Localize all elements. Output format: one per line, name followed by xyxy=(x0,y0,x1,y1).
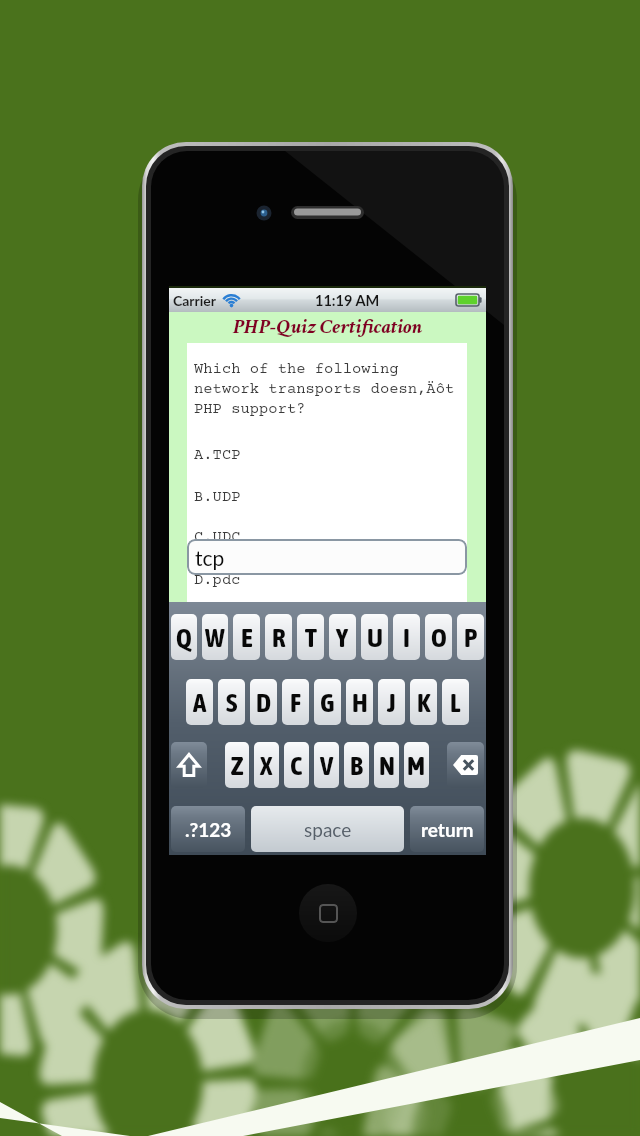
staticText: return xyxy=(421,818,474,841)
button[interactable]: T xyxy=(297,614,324,660)
button[interactable]: Home button xyxy=(299,884,357,942)
button[interactable]: Z xyxy=(225,742,249,788)
staticText: Q xyxy=(176,622,192,653)
button[interactable]: Shift xyxy=(171,742,207,788)
staticText: space xyxy=(304,818,352,841)
button[interactable]: D xyxy=(250,679,277,725)
button[interactable]: E xyxy=(233,614,260,660)
button[interactable]: R xyxy=(265,614,292,660)
button[interactable]: A xyxy=(186,679,213,725)
staticText: N xyxy=(379,750,395,781)
staticText: L xyxy=(450,687,461,718)
staticText: X xyxy=(260,750,273,781)
button[interactable]: W xyxy=(202,614,228,660)
staticText: B.UDP xyxy=(194,489,241,506)
staticText: P xyxy=(464,622,478,653)
staticText: T xyxy=(305,622,317,653)
staticText: D xyxy=(256,687,272,718)
staticText: C.UDC xyxy=(194,529,241,546)
button[interactable]: Q xyxy=(171,614,197,660)
staticText: Carrier xyxy=(173,292,217,309)
staticText: A.TCP xyxy=(194,447,241,464)
button[interactable]: tcp xyxy=(187,539,467,575)
button[interactable]: L xyxy=(442,679,469,725)
staticText: R xyxy=(272,622,286,653)
button[interactable]: O xyxy=(425,614,452,660)
staticText: V xyxy=(320,750,334,781)
button[interactable]: S xyxy=(218,679,245,725)
button[interactable]: space xyxy=(251,806,404,852)
staticText: I xyxy=(403,622,410,653)
button[interactable]: X xyxy=(254,742,279,788)
staticText: F xyxy=(290,687,301,718)
staticText: Which of the following network transport… xyxy=(194,361,455,418)
staticText: H xyxy=(352,687,368,718)
staticText: O xyxy=(431,622,447,653)
staticText: D.pdc xyxy=(194,572,241,589)
staticText: .?123 xyxy=(185,818,232,841)
button[interactable]: U xyxy=(361,614,388,660)
staticText: A xyxy=(193,687,207,718)
button[interactable]: Y xyxy=(329,614,356,660)
staticText: M xyxy=(407,750,426,781)
staticText: J xyxy=(387,687,396,718)
button[interactable]: Backspace xyxy=(447,742,484,788)
button[interactable]: P xyxy=(457,614,484,660)
button[interactable]: .?123 xyxy=(171,806,245,852)
button[interactable]: H xyxy=(346,679,373,725)
button[interactable]: return xyxy=(410,806,484,852)
button[interactable]: F xyxy=(282,679,309,725)
staticText: G xyxy=(320,687,335,718)
button[interactable]: I xyxy=(393,614,420,660)
staticText: Z xyxy=(231,750,244,781)
button[interactable]: V xyxy=(314,742,339,788)
staticText: B xyxy=(350,750,363,781)
button[interactable]: G xyxy=(314,679,341,725)
staticText: K xyxy=(417,687,431,718)
staticText: C xyxy=(290,750,303,781)
staticText: Y xyxy=(336,622,349,653)
staticText: 11:19 AM xyxy=(315,292,380,309)
staticText: U xyxy=(367,622,383,653)
staticText: S xyxy=(226,687,238,718)
button[interactable]: M xyxy=(404,742,429,788)
button[interactable]: N xyxy=(374,742,399,788)
button[interactable]: B xyxy=(344,742,369,788)
staticText: W xyxy=(205,622,225,653)
button[interactable]: J xyxy=(378,679,405,725)
button[interactable]: K xyxy=(410,679,437,725)
staticText: E xyxy=(241,622,253,653)
staticText: tcp xyxy=(195,545,225,570)
staticText: PHP-Quiz Certification xyxy=(233,313,423,341)
button[interactable]: C xyxy=(284,742,309,788)
